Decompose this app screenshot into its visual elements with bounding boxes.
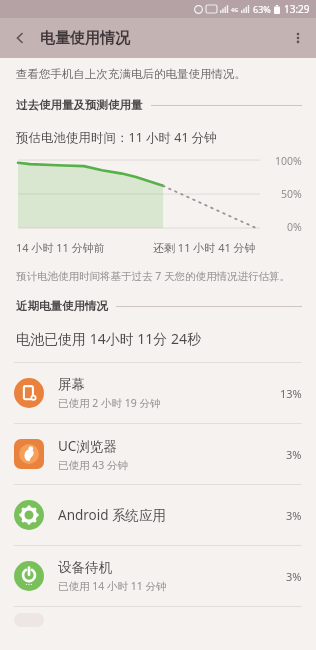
staticText: 63% — [253, 3, 271, 15]
staticText: 100% — [275, 154, 302, 168]
button[interactable]: Android 系统应用 — [0, 485, 316, 545]
staticText: Android 系统应用 — [58, 506, 167, 524]
staticText: 已使用 43 分钟 — [58, 458, 128, 472]
staticText: 3% — [286, 447, 302, 462]
staticText: 3% — [286, 508, 302, 523]
staticText: 设备待机 — [58, 559, 112, 576]
staticText: 已使用 14 小时 11 分钟 — [58, 579, 167, 593]
staticText: 屏幕 — [58, 376, 85, 393]
staticText: 13% — [280, 386, 302, 401]
staticText: 已使用 2 小时 19 分钟 — [58, 396, 161, 410]
staticText: 预估电池使用时间：11 小时 41 分钟 — [16, 129, 217, 146]
staticText: 3% — [286, 569, 302, 584]
staticText: 50% — [281, 187, 302, 201]
staticText: 0% — [287, 220, 302, 234]
staticText: 电量使用情况 — [40, 29, 130, 48]
button[interactable]: 屏幕 — [0, 363, 316, 423]
staticText: 13:29 — [284, 2, 310, 16]
staticText: 14 小时 11 分钟前 — [16, 240, 105, 255]
staticText: 近期电量使用情况 — [16, 299, 108, 313]
staticText: 4G — [231, 6, 239, 13]
button[interactable]: 设备待机 — [0, 546, 316, 606]
staticText: 查看您手机自上次充满电后的电量使用情况。 — [16, 67, 246, 81]
staticText: UC浏览器 — [58, 437, 117, 455]
staticText: 电池已使用 14小时 11分 24秒 — [16, 329, 201, 348]
staticText: 还剩 11 小时 41 分钟 — [153, 240, 256, 255]
staticText: 过去使用量及预测使用量 — [16, 98, 143, 112]
staticText: 预计电池使用时间将基于过去 7 天您的使用情况进行估算。 — [16, 269, 290, 283]
button[interactable]: UC浏览器 — [0, 424, 316, 484]
button[interactable]: More options — [280, 18, 316, 58]
button[interactable]: Back — [0, 18, 40, 58]
